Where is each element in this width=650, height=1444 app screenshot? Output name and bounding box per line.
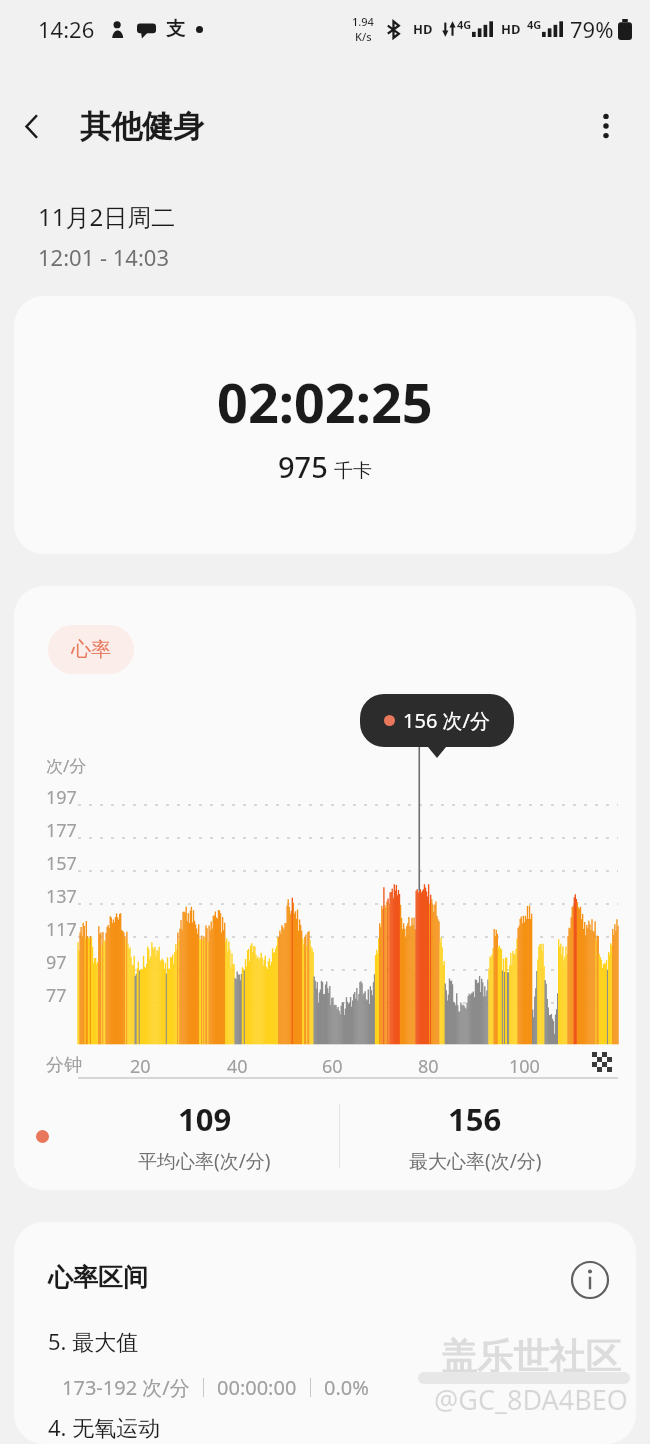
staticText: 156 [448,1098,502,1140]
staticText: 197 [46,785,77,810]
staticText: 盖乐世社区 [441,1334,621,1379]
staticText: HD [413,20,433,38]
staticText: 次/分 [46,754,87,777]
staticText: 00:00:00 [217,1374,297,1401]
staticText: 千卡 [334,459,372,483]
staticText: HD [501,20,521,38]
staticText: 4. 无氧运动 [48,1412,161,1442]
staticText: 156 次/分 [403,707,490,734]
staticText: 157 [46,851,77,876]
staticText: K/s [355,29,372,44]
staticText: 4G [457,17,472,32]
staticText: 12:01 - 14:03 [38,242,169,272]
staticText: 117 [46,917,77,942]
staticText: 平均心率(次/分) [138,1148,271,1174]
staticText: 60 [322,1054,343,1079]
staticText: 77 [46,983,67,1008]
button[interactable]: 02:02:25 [14,296,636,554]
staticText: 1.94 [352,14,374,29]
staticText: 心率区间 [48,1262,148,1293]
staticText: 11月2日周二 [38,200,176,233]
button[interactable]: Info [562,1252,618,1308]
button[interactable]: 心率 [48,625,134,674]
staticText: 4G [527,17,542,32]
staticText: 其他健身 [80,107,204,146]
staticText: 支 [166,17,185,41]
button[interactable]: Back [0,94,64,158]
staticText: 心率 [71,637,111,662]
staticText: 79% [570,14,614,44]
staticText: 177 [46,818,77,843]
staticText: @GC_8DA4BEO [434,1381,628,1418]
staticText: 分钟 [46,1054,82,1077]
staticText: 137 [46,884,77,909]
button[interactable]: More options [576,96,636,156]
staticText: 975 [278,447,328,486]
staticText: 20 [130,1054,151,1079]
staticText: 109 [178,1098,232,1140]
staticText: 最大心率(次/分) [409,1148,542,1174]
staticText: 173-192 次/分 [62,1374,190,1401]
staticText: 100 [509,1054,540,1079]
staticText: 02:02:25 [217,365,433,439]
staticText: 14:26 [38,14,95,44]
staticText: 5. 最大值 [48,1326,139,1356]
staticText: 80 [418,1054,439,1079]
staticText: 0.0% [324,1374,369,1401]
staticText: 40 [227,1054,248,1079]
staticText: 97 [46,950,67,975]
